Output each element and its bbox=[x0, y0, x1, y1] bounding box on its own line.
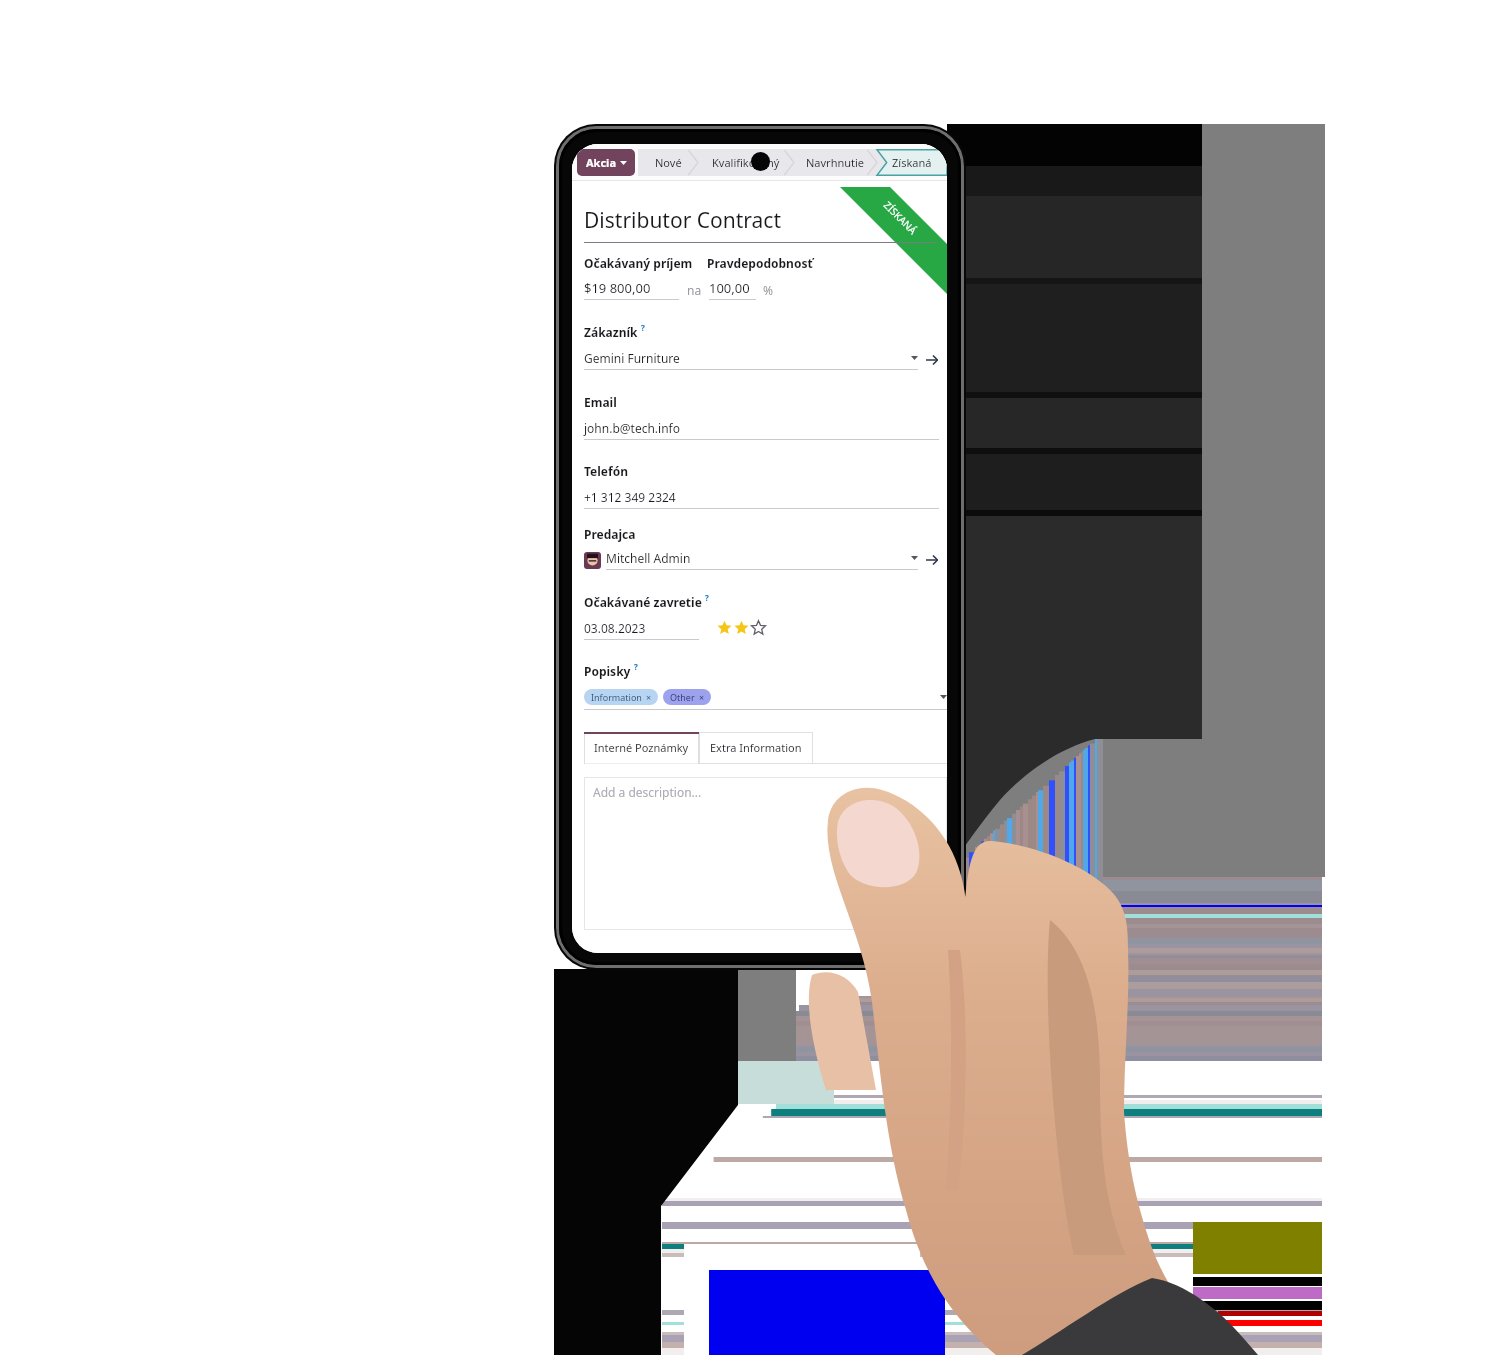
staticText: Distributor Contract bbox=[584, 206, 782, 235]
staticText: Mitchell Admin bbox=[606, 550, 911, 566]
button[interactable]: Interné Poznámky bbox=[584, 732, 699, 763]
staticText: john.b@tech.info bbox=[584, 420, 939, 436]
staticText: Interné Poznámky bbox=[594, 740, 689, 755]
staticText: Predajca bbox=[584, 526, 636, 542]
staticText: ? bbox=[705, 592, 709, 603]
button[interactable]: Priority rating bbox=[717, 620, 766, 635]
staticText: ? bbox=[634, 661, 638, 672]
staticText: Nové bbox=[655, 155, 682, 170]
button[interactable]: Navrhnutie bbox=[794, 149, 877, 176]
staticText: Extra Information bbox=[710, 740, 802, 755]
staticText: Očakávané zavretie bbox=[584, 594, 702, 610]
staticText: Kvalifikovaný bbox=[712, 155, 780, 170]
staticText: Zákazník bbox=[584, 324, 638, 340]
staticText: Other bbox=[670, 691, 695, 703]
button[interactable]: Kvalifikovaný bbox=[698, 149, 794, 176]
staticText: +1 312 349 2324 bbox=[584, 489, 939, 505]
staticText: 100,00 bbox=[709, 279, 750, 297]
staticText: Email bbox=[584, 394, 617, 410]
button[interactable]: Open record bbox=[925, 553, 939, 567]
staticText: $19 800,00 bbox=[584, 279, 651, 297]
staticText: 03.08.2023 bbox=[584, 620, 646, 636]
staticText: × bbox=[646, 691, 652, 703]
button[interactable]: Open record bbox=[925, 353, 939, 367]
button[interactable]: Information bbox=[584, 689, 658, 705]
staticText: Navrhnutie bbox=[806, 155, 865, 170]
staticText: Akcia bbox=[586, 155, 616, 170]
button[interactable]: Extra Information bbox=[699, 732, 813, 763]
staticText: % bbox=[763, 282, 773, 298]
staticText: Získaná bbox=[892, 155, 932, 170]
staticText: Add a description... bbox=[593, 784, 702, 800]
staticText: Information bbox=[591, 691, 642, 703]
staticText: ? bbox=[641, 322, 645, 333]
staticText: Pravdepodobnosť bbox=[707, 255, 813, 271]
button[interactable]: Akcia bbox=[577, 149, 635, 176]
staticText: ZÍSKANÁ bbox=[881, 198, 920, 238]
button[interactable]: Other bbox=[663, 689, 711, 705]
staticText: × bbox=[699, 691, 705, 703]
staticText: Očakávaný príjem bbox=[584, 255, 693, 271]
button[interactable]: Nové bbox=[638, 149, 698, 176]
staticText: na bbox=[687, 282, 702, 298]
staticText: Popisky bbox=[584, 663, 631, 679]
staticText: Gemini Furniture bbox=[584, 350, 911, 366]
button[interactable]: Získaná bbox=[877, 149, 947, 176]
button[interactable]: Add a description... bbox=[584, 777, 947, 930]
staticText: Telefón bbox=[584, 463, 628, 479]
